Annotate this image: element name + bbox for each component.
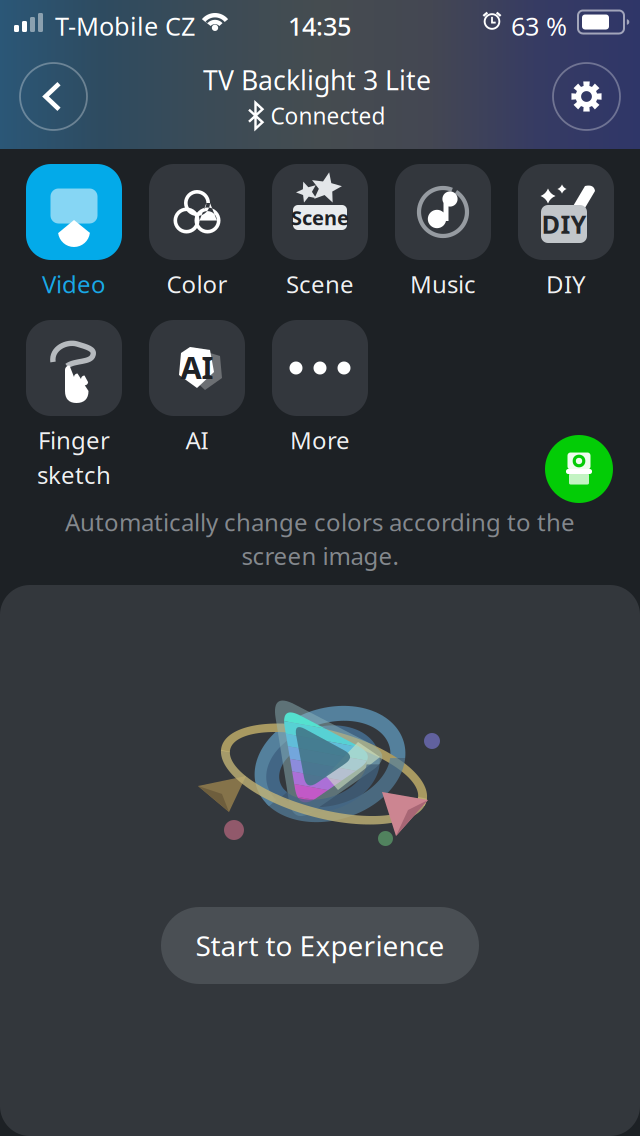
button[interactable]: Screen capture xyxy=(545,435,613,503)
staticText: Color xyxy=(166,268,227,300)
staticText: sketch xyxy=(37,459,111,491)
staticText: T-Mobile CZ xyxy=(55,9,195,43)
staticText: AI xyxy=(185,424,208,456)
button[interactable]: DIY xyxy=(518,164,614,260)
staticText: screen image. xyxy=(241,540,398,572)
staticText: TV Backlight 3 Lite xyxy=(203,62,431,98)
staticText: Finger xyxy=(38,424,110,456)
staticText: More xyxy=(290,424,350,456)
staticText: AI xyxy=(180,347,213,387)
staticText: DIY xyxy=(546,268,586,300)
staticText: Music xyxy=(410,268,476,300)
button[interactable]: Music xyxy=(395,164,491,260)
staticText: Automatically change colors according to… xyxy=(65,506,575,538)
staticText: Connected xyxy=(270,101,385,131)
staticText: Scene xyxy=(286,268,354,300)
button[interactable]: Video xyxy=(26,164,122,260)
staticText: Video xyxy=(42,268,106,300)
button[interactable]: Finger xyxy=(26,320,122,416)
button[interactable]: AI xyxy=(149,320,245,416)
button[interactable]: Back xyxy=(20,63,87,130)
staticText: 63 % xyxy=(511,9,567,43)
button[interactable]: Start to Experience xyxy=(161,907,479,984)
staticText: Start to Experience xyxy=(195,927,444,964)
staticText: 14:35 xyxy=(288,9,351,43)
button[interactable]: More xyxy=(272,320,368,416)
staticText: Scene xyxy=(291,204,349,231)
button[interactable]: Color xyxy=(149,164,245,260)
button[interactable]: Scene xyxy=(272,164,368,260)
button[interactable]: Settings xyxy=(553,63,620,130)
staticText: DIY xyxy=(541,207,586,241)
